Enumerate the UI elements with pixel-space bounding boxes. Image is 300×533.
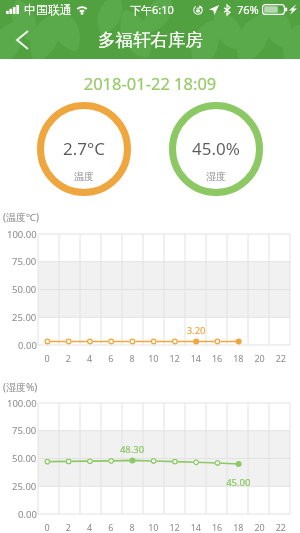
staticText: (湿度%) [3,380,38,394]
staticText: 多福轩右库房 [98,29,203,51]
staticText: (温度℃) [3,210,39,224]
staticText: 温度 [74,170,94,183]
staticText: 45.0% [192,137,240,160]
staticText: 76% [237,2,259,17]
staticText: 湿度 [206,170,226,183]
button[interactable]: Back [0,20,44,59]
button[interactable]: 45.0% [169,102,263,196]
staticText: 中国联通 [24,2,72,17]
staticText: 2018-01-22 18:09 [0,72,300,94]
staticText: 2.7°C [63,137,106,160]
button[interactable]: 2.7°C [37,102,131,196]
staticText: 下午6:10 [130,2,174,17]
